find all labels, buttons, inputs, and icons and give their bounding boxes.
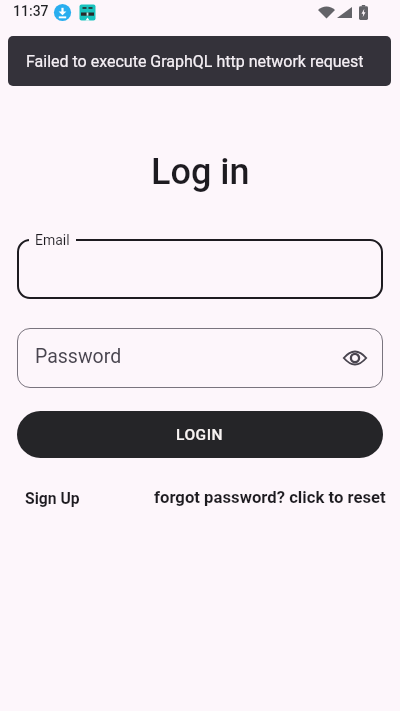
button[interactable]: forgot password? click to reset <box>154 488 386 508</box>
staticText: 11:37 <box>13 3 49 19</box>
staticText: forgot password? click to reset <box>154 488 386 508</box>
staticText: LOGIN <box>176 426 224 444</box>
button[interactable]: Failed to execute GraphQL http network r… <box>8 36 391 86</box>
button[interactable]: LOGIN <box>17 411 383 458</box>
button[interactable]: Sign Up <box>25 489 80 507</box>
staticText: Sign Up <box>25 489 80 507</box>
button[interactable]: Password <box>17 328 383 388</box>
staticText: Failed to execute GraphQL http network r… <box>26 52 364 71</box>
staticText: Password <box>35 345 122 368</box>
staticText: Email <box>35 232 70 248</box>
staticText: Log in <box>151 151 250 193</box>
button[interactable] <box>17 239 383 299</box>
button[interactable] <box>331 334 379 382</box>
